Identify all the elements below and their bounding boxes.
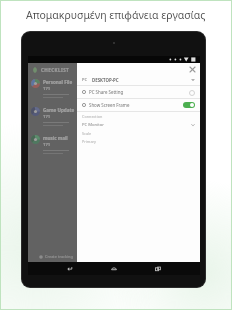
staticText: Scale [82,131,92,136]
staticText: Connection [82,114,103,119]
staticText: DESKTOP-PC [92,77,119,83]
button[interactable]: Home [101,262,127,275]
staticText: Game Update [43,107,75,113]
staticText: PC [82,77,88,82]
button[interactable]: Recent apps [145,262,171,275]
button[interactable]: Game Update [28,104,77,132]
button[interactable]: Close [188,65,196,73]
staticText: PC Share Setting [89,89,124,95]
button[interactable]: music mail [28,132,77,160]
button[interactable]: Toggle off [188,89,195,96]
staticText: 171 [43,142,51,148]
button[interactable]: PC Share Setting [77,86,200,98]
button[interactable]: Create tracking [28,251,77,262]
button[interactable]: Show Screen Frame [77,99,200,111]
staticText: Personal File [43,79,73,85]
button[interactable]: CHECKLIST [28,63,77,76]
staticText: Απομακρυσμένη επιφάνεια εργασίας [26,8,206,22]
button[interactable]: Back [57,262,83,275]
staticText: Primary [82,139,97,144]
staticText: Create tracking [45,254,73,259]
button[interactable]: PC Monitor [77,120,200,129]
staticText: Show Screen Frame [89,102,130,108]
staticText: music mail [43,135,68,141]
staticText: 171 [43,86,51,92]
button[interactable]: PC [77,74,200,85]
staticText: 171 [43,114,51,120]
button[interactable]: Toggle on [183,102,195,108]
button[interactable]: Personal File [28,76,77,104]
staticText: CHECKLIST [41,67,70,73]
staticText: PC Monitor [82,122,105,128]
